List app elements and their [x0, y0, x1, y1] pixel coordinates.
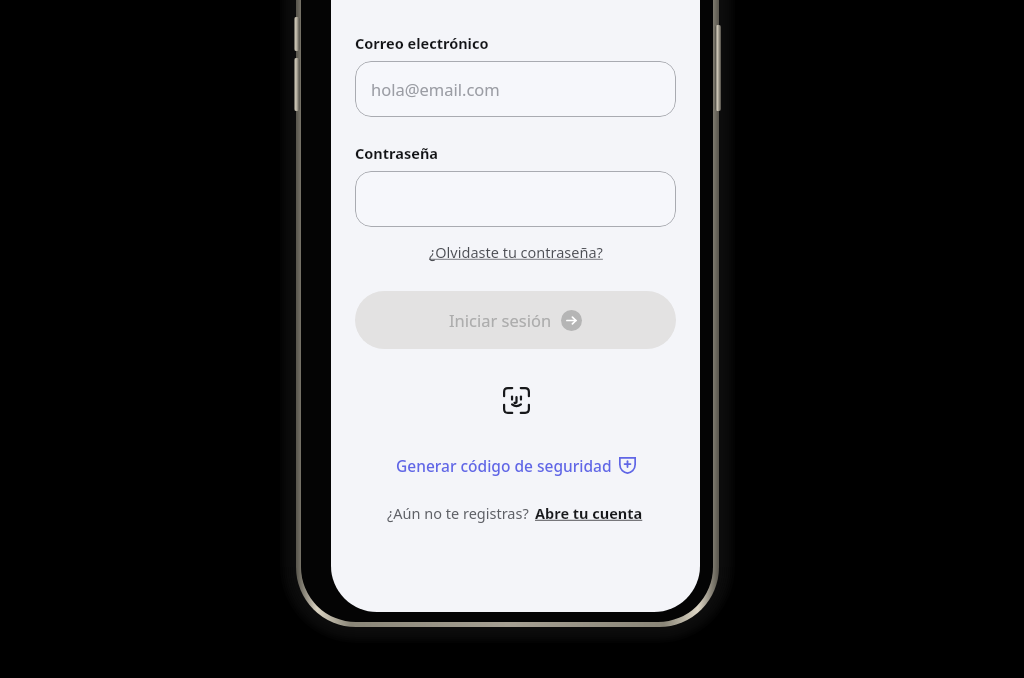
- staticText: ¿Olvidaste tu contraseña?: [429, 242, 603, 262]
- button[interactable]: hola@email.com: [355, 61, 676, 117]
- button[interactable]: Iniciar sesión: [355, 291, 676, 349]
- button[interactable]: Abre tu cuenta: [533, 501, 645, 525]
- staticText: hola@email.com: [371, 78, 500, 100]
- staticText: Iniciar sesión: [449, 309, 552, 331]
- staticText: ¿Aún no te registras?: [387, 503, 533, 523]
- staticText: Abre tu cuenta: [535, 503, 643, 523]
- button[interactable]: ¿Olvidaste tu contraseña?: [425, 239, 607, 265]
- button[interactable]: [355, 171, 676, 227]
- staticText: Correo electrónico: [355, 33, 489, 53]
- button[interactable]: Iniciar sesión con Face ID: [498, 382, 534, 418]
- staticText: Generar código de seguridad: [396, 455, 612, 476]
- button[interactable]: Generar código de seguridad: [355, 451, 676, 480]
- staticText: Contraseña: [355, 143, 439, 163]
